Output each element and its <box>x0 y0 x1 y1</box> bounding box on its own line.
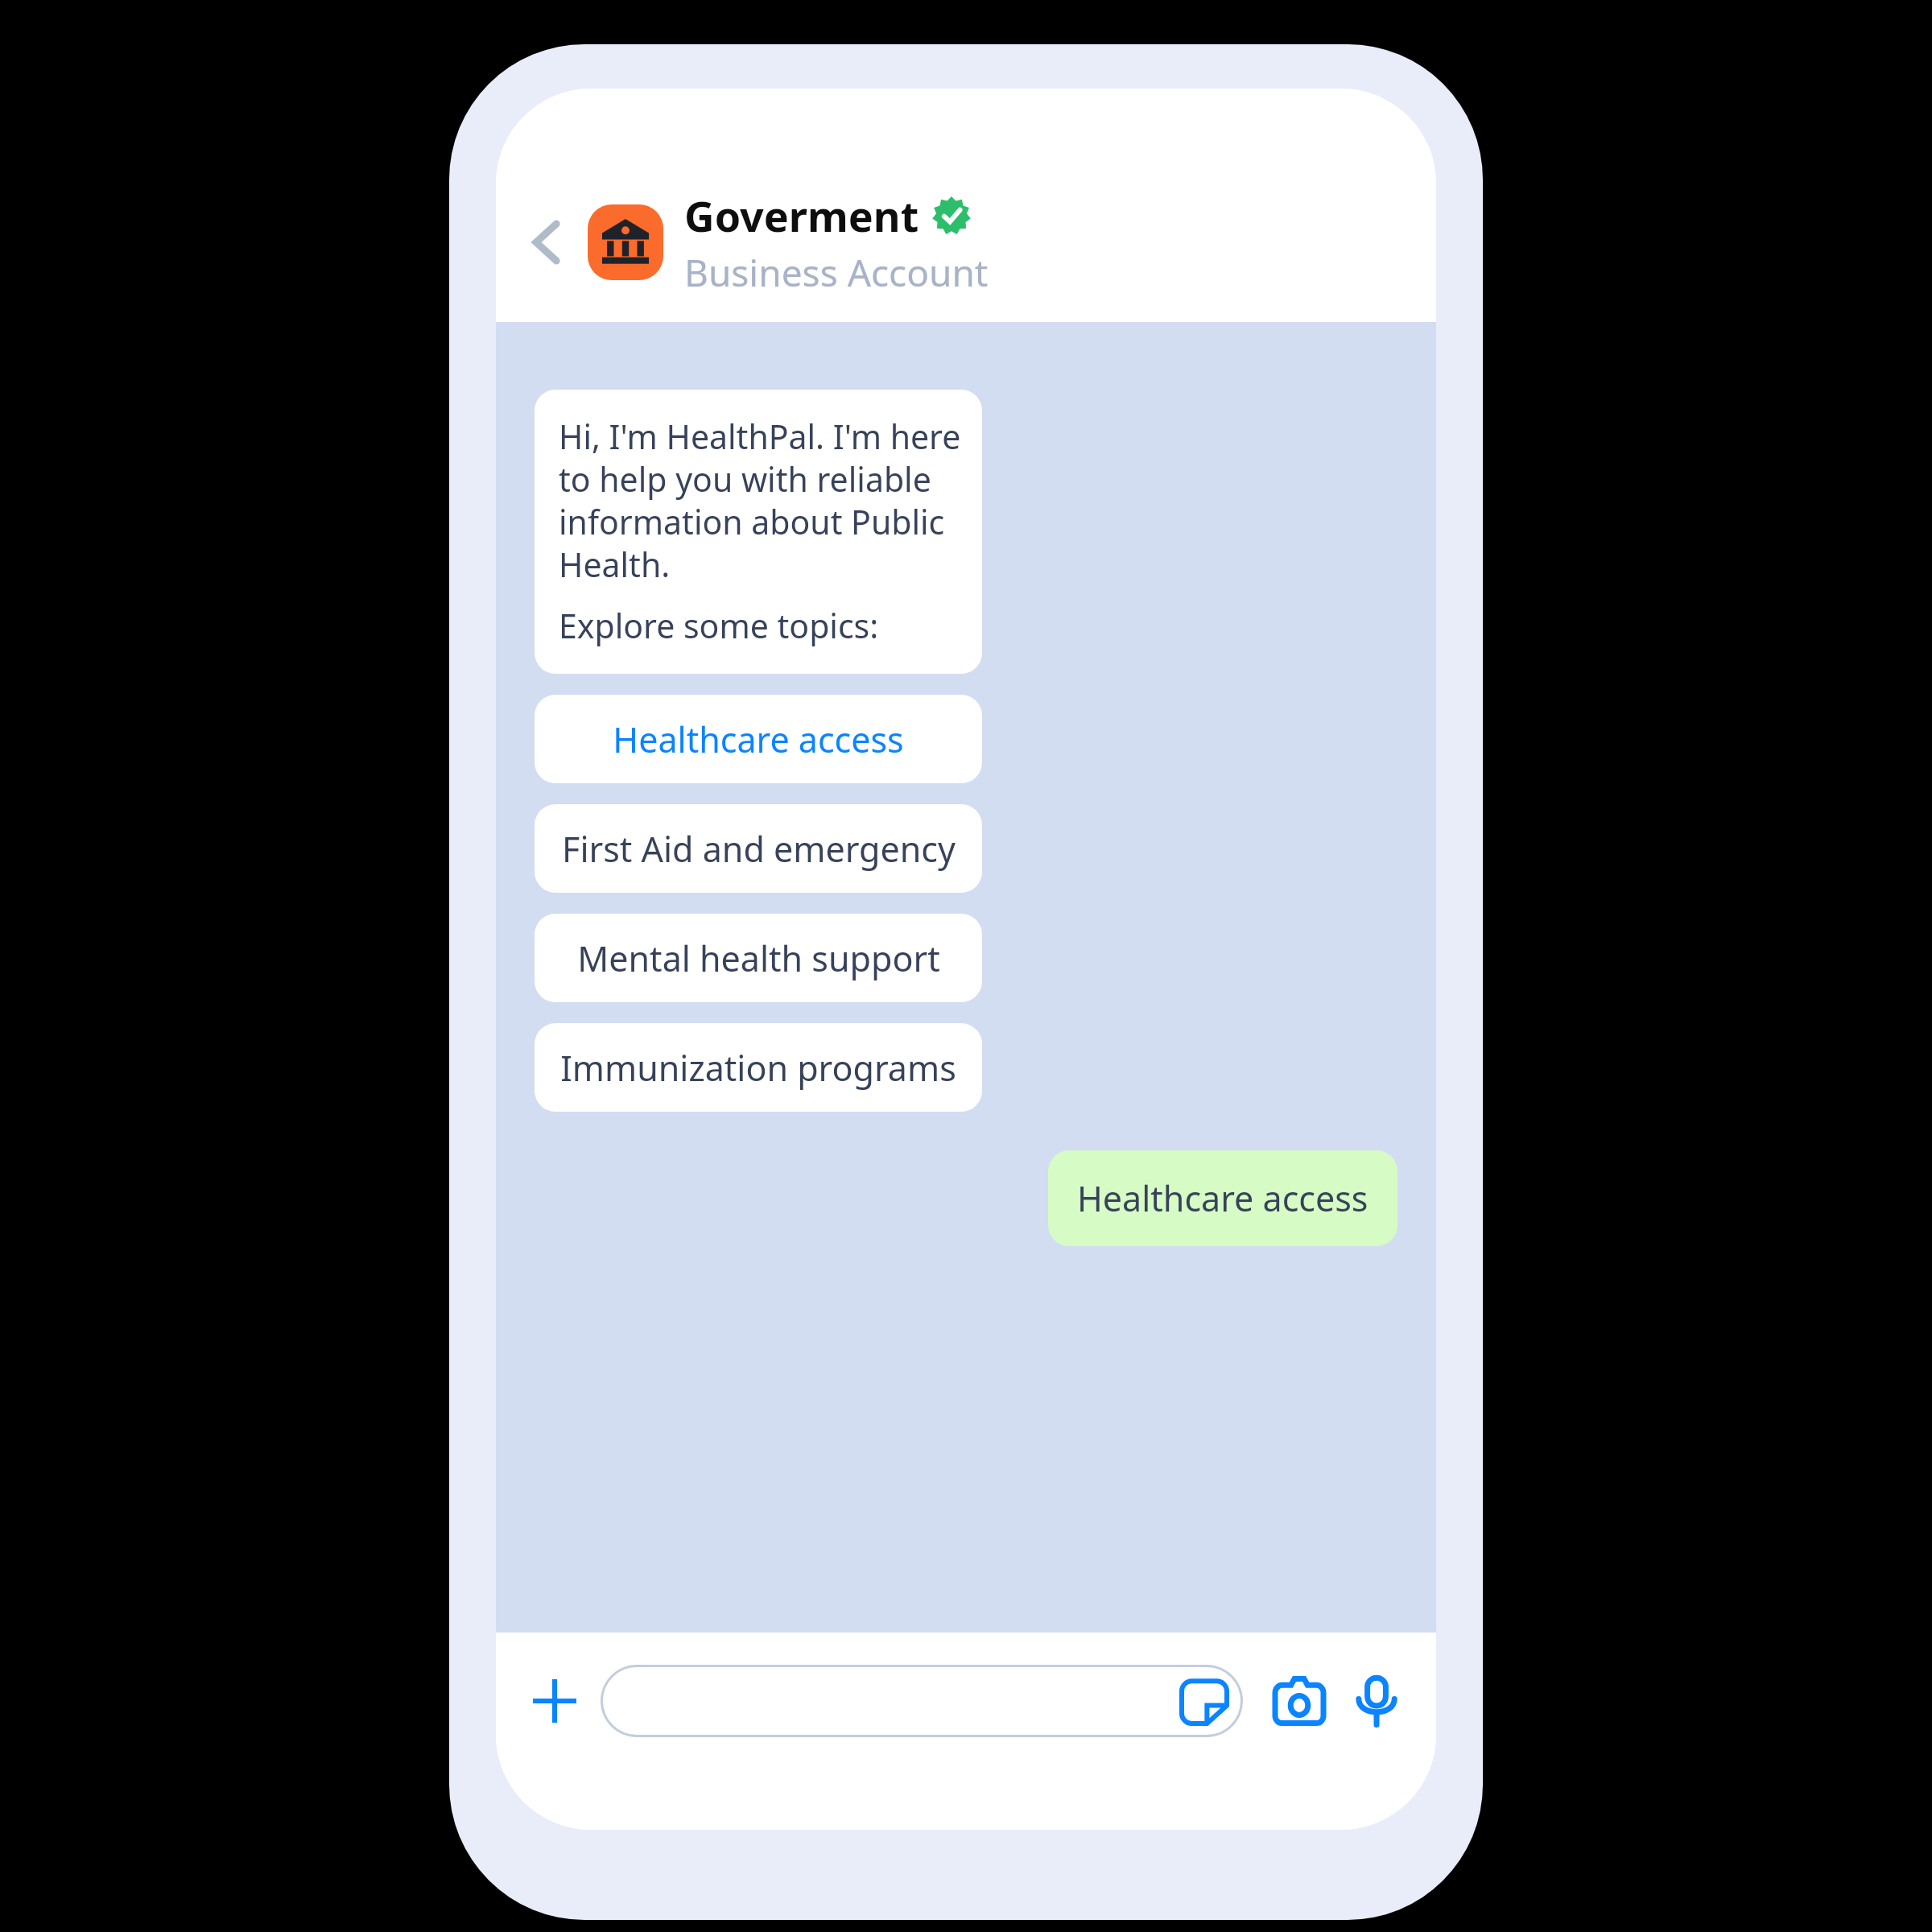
staticText: Hi, I'm HealthPal. I'm here to help you … <box>559 414 961 587</box>
button[interactable]: Message input <box>601 1665 1243 1737</box>
staticText: First Aid and emergency <box>562 825 956 873</box>
button[interactable]: Voice message <box>1341 1666 1412 1736</box>
button[interactable]: First Aid and emergency <box>535 804 982 893</box>
button[interactable]: Camera <box>1264 1666 1335 1736</box>
button[interactable]: Healthcare access <box>535 695 982 783</box>
staticText: Healthcare access <box>1077 1174 1368 1222</box>
staticText: Goverment <box>684 187 919 244</box>
staticText: Healthcare access <box>613 716 904 763</box>
staticText: Immunization programs <box>560 1044 956 1092</box>
button[interactable]: Healthcare access <box>1048 1150 1397 1246</box>
staticText: Explore some topics: <box>559 603 879 648</box>
staticText: Business Account <box>684 247 989 298</box>
button[interactable]: Immunization programs <box>535 1023 982 1112</box>
button[interactable]: Mental health support <box>535 914 982 1002</box>
button[interactable]: Hi, I'm HealthPal. I'm here to help you … <box>535 390 982 674</box>
button[interactable]: Back <box>515 210 580 275</box>
button[interactable]: Attach <box>520 1666 589 1736</box>
staticText: Mental health support <box>577 935 940 982</box>
